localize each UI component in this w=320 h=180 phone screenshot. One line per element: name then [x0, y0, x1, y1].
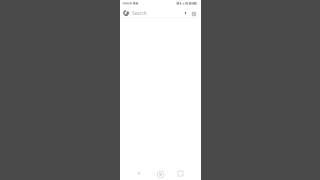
staticText: Search	[132, 10, 147, 16]
button[interactable]: Switch tabs	[191, 11, 196, 16]
button[interactable]: Home	[152, 168, 168, 180]
button[interactable]: Search	[123, 8, 182, 18]
button[interactable]: Back	[131, 168, 145, 179]
button[interactable]: Recent apps	[173, 168, 187, 179]
button[interactable]: Voice search	[182, 10, 188, 16]
